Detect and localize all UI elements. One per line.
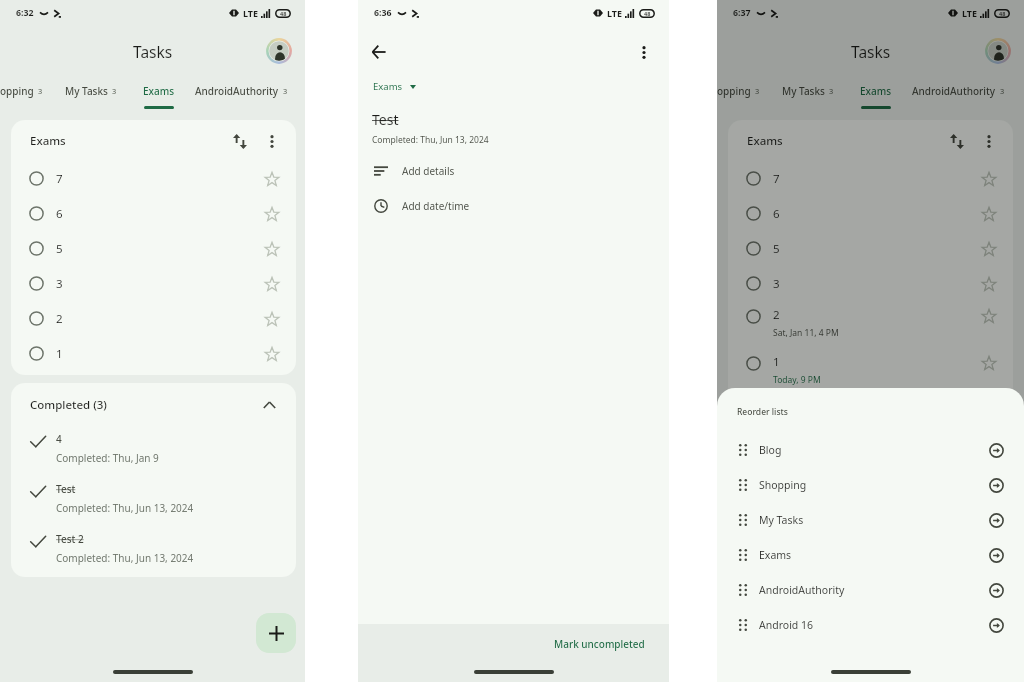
button[interactable]: Star (978, 168, 1000, 190)
staticText: Mark uncompleted (554, 637, 645, 651)
button[interactable]: Exams (717, 537, 1024, 572)
button[interactable]: My Tasks (42, 76, 140, 112)
button[interactable]: Move list (985, 474, 1007, 496)
button[interactable]: Move list (985, 509, 1007, 531)
button[interactable]: Star (978, 203, 1000, 225)
staticText: Add date/time (402, 199, 470, 213)
button[interactable]: 7 (728, 161, 1013, 196)
button[interactable]: More options (259, 128, 285, 154)
button[interactable]: Exams (373, 77, 416, 96)
staticText: Exams (30, 133, 66, 149)
staticText: AndroidAuthority (759, 583, 845, 597)
button[interactable]: Star (261, 273, 283, 295)
staticText: Test 2 (56, 532, 84, 546)
staticText: 6:32 (16, 7, 34, 19)
button[interactable]: AndroidAuthority (177, 76, 305, 112)
staticText: Completed: Thu, Jun 13, 2024 (56, 501, 194, 515)
button[interactable]: Android 16 (717, 607, 1024, 642)
button[interactable]: Test (11, 477, 296, 527)
staticText: LTE (243, 7, 259, 19)
staticText: 6:36 (374, 7, 392, 19)
button[interactable]: Exams (857, 76, 894, 112)
button[interactable]: 1 (728, 348, 1013, 395)
button[interactable]: 6 (728, 196, 1013, 231)
staticText: Blog (759, 443, 782, 457)
staticText: My Tasks (65, 84, 108, 98)
button[interactable]: Account (266, 38, 292, 64)
staticText: opping (717, 84, 751, 98)
staticText: Shopping (759, 478, 807, 492)
button[interactable]: More options (976, 128, 1002, 154)
staticText: 2 (773, 307, 780, 323)
staticText: 7 (773, 171, 780, 187)
button[interactable]: Move list (985, 439, 1007, 461)
staticText: Add details (402, 164, 455, 178)
staticText: 7 (56, 171, 63, 187)
button[interactable]: opping (717, 76, 759, 112)
button[interactable]: 1 (11, 336, 296, 371)
button[interactable]: Move list (985, 544, 1007, 566)
staticText: Test (372, 110, 399, 129)
staticText: 3 (773, 276, 780, 292)
button[interactable]: 3 (11, 266, 296, 301)
staticText: 1 (773, 354, 780, 370)
staticText: Android 16 (759, 618, 814, 632)
button[interactable]: Shopping (717, 467, 1024, 502)
button[interactable]: opping (0, 76, 42, 112)
button[interactable]: 2 (728, 301, 1013, 348)
button[interactable]: Test 2 (11, 527, 296, 577)
staticText: Reorder lists (737, 406, 788, 418)
button[interactable]: Account (985, 38, 1011, 64)
button[interactable]: 5 (728, 231, 1013, 266)
staticText: My Tasks (782, 84, 825, 98)
staticText: Exams (143, 84, 175, 98)
button[interactable]: Star (261, 203, 283, 225)
staticText: 4 (56, 432, 62, 446)
button[interactable]: Back (368, 39, 394, 65)
button[interactable]: Star (261, 343, 283, 365)
staticText: Sat, Jan 11, 4 PM (773, 327, 839, 339)
staticText: AndroidAuthority (195, 84, 279, 98)
staticText: My Tasks (759, 513, 804, 527)
staticText: Today, 9 PM (773, 374, 821, 386)
button[interactable]: Sort (944, 128, 970, 154)
staticText: 6 (773, 206, 780, 222)
button[interactable]: Add details (358, 157, 669, 185)
staticText: 6 (56, 206, 63, 222)
button[interactable]: Completed (3) (11, 383, 296, 427)
button[interactable]: My Tasks (717, 502, 1024, 537)
button[interactable]: Star (261, 168, 283, 190)
button[interactable]: Star (261, 238, 283, 260)
staticText: 3 (1000, 86, 1005, 96)
button[interactable]: 5 (11, 231, 296, 266)
staticText: LTE (607, 7, 623, 19)
button[interactable]: Blog (717, 432, 1024, 467)
button[interactable]: AndroidAuthority (717, 572, 1024, 607)
button[interactable]: 4 (11, 427, 296, 477)
button[interactable]: AndroidAuthority (894, 76, 1022, 112)
button[interactable]: Sort (227, 128, 253, 154)
button[interactable]: Add date/time (358, 192, 669, 220)
button[interactable]: My Tasks (759, 76, 857, 112)
staticText: Exams (860, 84, 892, 98)
staticText: 3 (38, 86, 42, 96)
button[interactable]: 7 (11, 161, 296, 196)
button[interactable]: Star (261, 308, 283, 330)
staticText: Completed: Thu, Jun 13, 2024 (372, 134, 489, 146)
button[interactable]: Mark uncompleted (554, 637, 645, 651)
staticText: 5 (773, 241, 780, 257)
staticText: 5 (56, 241, 63, 257)
button[interactable]: 2 (11, 301, 296, 336)
button[interactable]: Move list (985, 614, 1007, 636)
button[interactable]: Star (978, 273, 1000, 295)
button[interactable]: 3 (728, 266, 1013, 301)
button[interactable]: More options (631, 39, 657, 65)
button[interactable]: Move list (985, 579, 1007, 601)
button[interactable]: Exams (140, 76, 177, 112)
staticText: 3 (829, 86, 834, 96)
button[interactable]: 6 (11, 196, 296, 231)
button[interactable]: Star (978, 238, 1000, 260)
button[interactable]: Add task (256, 613, 296, 653)
staticText: Completed (3) (30, 397, 107, 413)
staticText: Completed: Thu, Jun 13, 2024 (56, 551, 194, 565)
